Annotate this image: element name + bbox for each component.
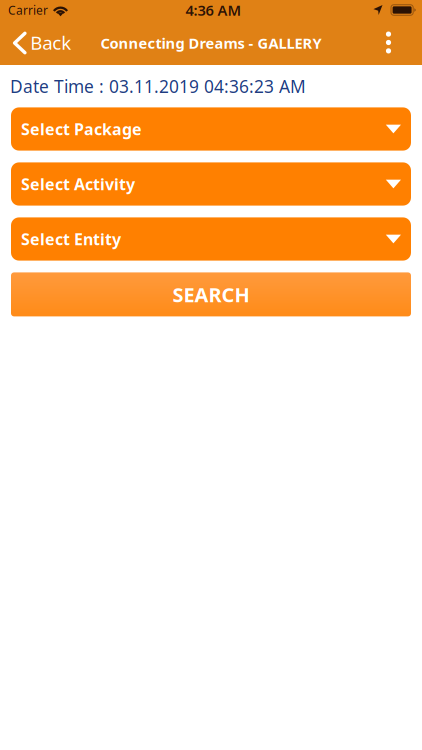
button[interactable]: Select Activity (11, 162, 411, 206)
staticText: Back (30, 30, 71, 55)
staticText: Select Package (21, 118, 142, 140)
staticText: Select Activity (21, 173, 135, 195)
staticText: 4:36 AM (185, 0, 241, 20)
staticText: SEARCH (172, 281, 249, 308)
button[interactable]: More options (366, 20, 411, 65)
staticText: Connecting Dreams - GALLERY (100, 33, 321, 53)
staticText: Select Entity (21, 228, 121, 250)
button[interactable]: Select Package (11, 107, 411, 151)
staticText: Carrier (8, 2, 48, 18)
button[interactable]: Select Entity (11, 217, 411, 261)
button[interactable]: Back (0, 20, 81, 65)
button[interactable]: SEARCH (11, 272, 411, 316)
staticText: Date Time : 03.11.2019 04:36:23 AM (10, 75, 306, 98)
